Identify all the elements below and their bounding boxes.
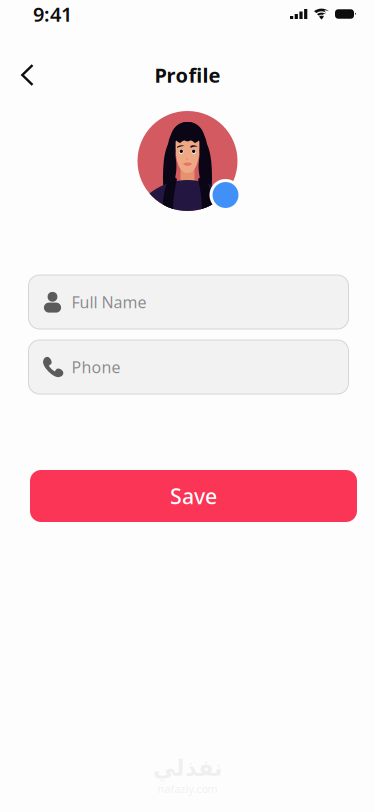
staticText: nafazly.com (157, 782, 217, 796)
button[interactable]: Phone (28, 340, 348, 394)
staticText: Phone (71, 356, 120, 378)
button[interactable]: Full Name (28, 275, 348, 329)
staticText: Save (170, 482, 217, 510)
staticText: نفذلي (152, 755, 222, 781)
button[interactable]: Save (30, 470, 357, 522)
staticText: Full Name (71, 291, 146, 313)
staticText: Profile (154, 62, 220, 88)
button[interactable]: Back (8, 53, 47, 96)
staticText: 9:41 (33, 1, 72, 27)
